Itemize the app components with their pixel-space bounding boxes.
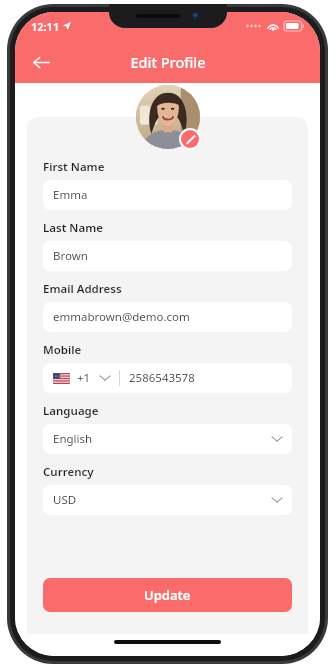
staticText: USD — [53, 492, 77, 508]
staticText: Language — [43, 403, 99, 419]
staticText: emmabrown@demo.com — [53, 309, 190, 325]
button[interactable] — [136, 85, 200, 149]
staticText: English — [53, 431, 93, 447]
button[interactable]: Emma — [43, 180, 292, 210]
button[interactable]: USD — [43, 485, 292, 515]
button[interactable]: Edit photo — [181, 130, 199, 148]
button[interactable]: Brown — [43, 241, 292, 271]
button[interactable]: Update — [43, 578, 292, 612]
staticText: 12:11 — [31, 19, 60, 34]
button[interactable]: English — [43, 424, 292, 454]
staticText: Email Address — [43, 281, 122, 297]
staticText: Brown — [53, 248, 88, 264]
staticText: 2586543578 — [129, 370, 195, 386]
staticText: Last Name — [43, 220, 103, 236]
staticText: Emma — [53, 187, 88, 203]
staticText: Update — [144, 586, 191, 604]
staticText: Mobile — [43, 342, 82, 358]
staticText: Edit Profile — [130, 52, 206, 72]
staticText: First Name — [43, 159, 105, 175]
button[interactable]: emmabrown@demo.com — [43, 302, 292, 332]
staticText: Currency — [43, 464, 94, 480]
button[interactable]: +1 — [43, 363, 292, 393]
button[interactable]: Back — [23, 44, 59, 80]
staticText: +1 — [77, 370, 91, 386]
